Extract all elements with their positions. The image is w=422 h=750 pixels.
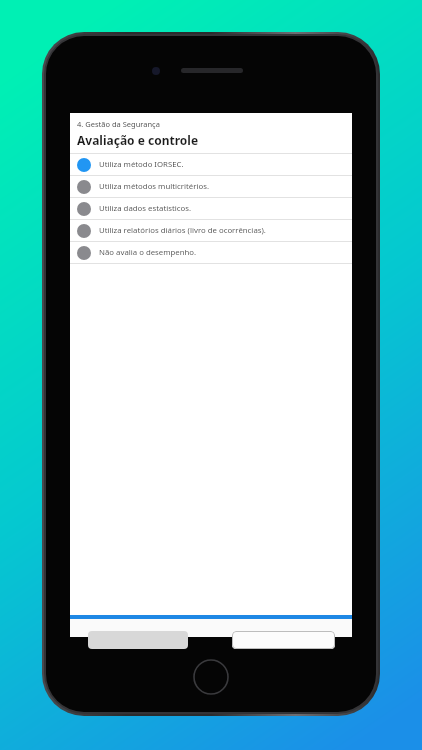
- button[interactable]: Utiliza dados estatisticos.: [70, 198, 352, 219]
- staticText: Utiliza dados estatisticos.: [99, 203, 192, 214]
- button[interactable]: Home: [193, 659, 229, 695]
- button[interactable]: [232, 631, 335, 649]
- staticText: Avaliação e controle: [77, 132, 199, 148]
- button[interactable]: [88, 631, 188, 649]
- staticText: Não avalia o desempenho.: [99, 247, 197, 258]
- staticText: 4. Gestão da Segurança: [77, 119, 160, 129]
- button[interactable]: Não avalia o desempenho.: [70, 242, 352, 263]
- staticText: Utiliza métodos multicritérios.: [99, 181, 210, 192]
- staticText: Utiliza relatórios diários (livro de oco…: [99, 225, 266, 236]
- staticText: Utiliza método IORSEC.: [99, 159, 184, 170]
- button[interactable]: Utiliza método IORSEC.: [70, 154, 352, 175]
- button[interactable]: Utiliza relatórios diários (livro de oco…: [70, 220, 352, 241]
- button[interactable]: Utiliza métodos multicritérios.: [70, 176, 352, 197]
